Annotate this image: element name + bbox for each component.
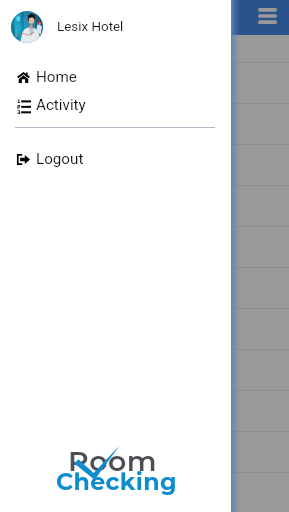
button[interactable] xyxy=(0,186,289,226)
button[interactable] xyxy=(0,268,289,308)
staticText: Home xyxy=(36,68,77,86)
button[interactable]: Home xyxy=(0,66,231,89)
button[interactable]: Lesix Hotel xyxy=(0,4,231,50)
button[interactable] xyxy=(0,432,289,472)
button[interactable]: Open navigation menu xyxy=(252,1,282,31)
staticText: Checking xyxy=(56,467,177,496)
button[interactable]: Logout xyxy=(0,148,231,171)
button[interactable] xyxy=(0,309,289,349)
staticText: Lesix Hotel xyxy=(57,19,124,35)
button[interactable] xyxy=(0,473,289,512)
staticText: Room xyxy=(68,444,157,478)
button[interactable] xyxy=(0,391,289,431)
button[interactable] xyxy=(0,35,289,62)
button[interactable] xyxy=(0,63,289,103)
button[interactable] xyxy=(0,227,289,267)
staticText: Logout xyxy=(36,150,84,168)
button[interactable]: Activity xyxy=(0,94,231,117)
button[interactable] xyxy=(0,145,289,185)
staticText: Activity xyxy=(36,96,86,114)
button[interactable] xyxy=(0,350,289,390)
button[interactable] xyxy=(0,104,289,144)
